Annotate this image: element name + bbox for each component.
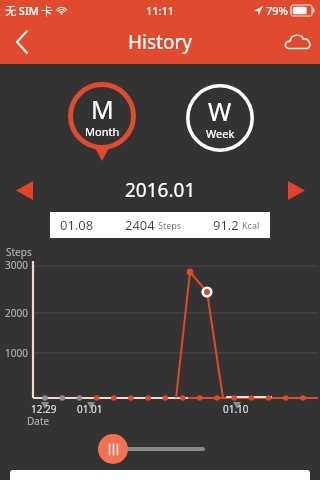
- button[interactable]: [10, 470, 310, 480]
- staticText: 79%: [266, 3, 288, 18]
- staticText: 3000: [5, 258, 28, 272]
- staticText: 1000: [5, 346, 28, 360]
- staticText: M: [91, 92, 114, 126]
- staticText: 01.01: [77, 402, 103, 416]
- button[interactable]: Back: [0, 20, 44, 64]
- button[interactable]: Cloud sync: [276, 20, 320, 64]
- staticText: 2000: [5, 306, 28, 320]
- button[interactable]: M: [68, 82, 136, 150]
- staticText: 01.08: [60, 216, 94, 234]
- button[interactable]: Next: [278, 172, 314, 208]
- staticText: 01.10: [223, 402, 249, 416]
- staticText: Week: [206, 126, 235, 141]
- staticText: W: [208, 94, 232, 128]
- button[interactable]: Zoom slider: [98, 434, 128, 464]
- button[interactable]: W: [186, 84, 254, 152]
- staticText: Steps: [158, 219, 182, 231]
- staticText: 无 SIM 卡: [5, 3, 53, 18]
- staticText: 2016.01: [125, 177, 196, 203]
- staticText: Steps: [6, 245, 32, 259]
- staticText: 91.2: [213, 216, 239, 234]
- staticText: History: [128, 29, 192, 55]
- staticText: 12.29: [31, 402, 57, 416]
- staticText: 2404: [125, 216, 155, 234]
- staticText: Kcal: [242, 219, 260, 231]
- staticText: 11:11: [146, 3, 175, 18]
- staticText: Date: [27, 414, 50, 428]
- staticText: Month: [85, 124, 120, 139]
- button[interactable]: 01.08: [50, 212, 270, 238]
- button[interactable]: Previous: [6, 172, 42, 208]
